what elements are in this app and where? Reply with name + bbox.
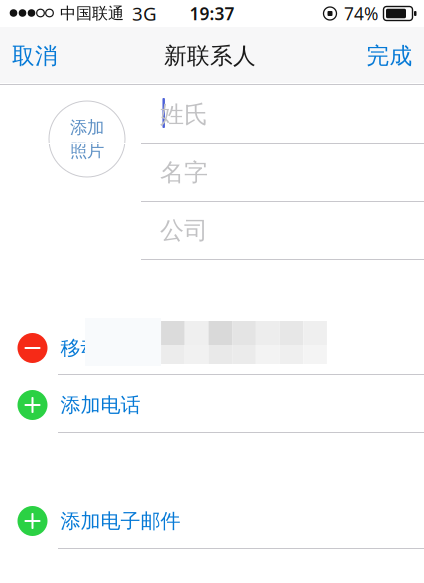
button[interactable]: 取消 (0, 28, 68, 84)
staticText: 名字 (160, 158, 208, 187)
button[interactable]: 添加 (49, 101, 125, 177)
staticText: 添加电子邮件 (60, 509, 180, 533)
button[interactable]: 姓氏 (0, 85, 424, 143)
button[interactable]: 完成 (356, 28, 423, 84)
staticText: 添加 (70, 117, 104, 138)
button[interactable]: 名字 (0, 143, 424, 201)
staticText: 移动 (60, 336, 100, 360)
staticText: 照片 (70, 140, 104, 161)
staticText: 中国联通 (60, 4, 124, 23)
staticText: 取消 (12, 42, 58, 70)
staticText: 3G (132, 1, 157, 26)
staticText: 添加电话 (60, 393, 140, 417)
staticText: 姓氏 (160, 100, 208, 129)
staticText: 新联系人 (164, 42, 256, 70)
button[interactable]: 添加电子邮件 (0, 490, 424, 548)
button[interactable]: 移动 (0, 316, 424, 374)
staticText: 完成 (366, 42, 412, 70)
button[interactable]: 添加电话 (0, 374, 424, 432)
button[interactable]: 公司 (0, 201, 424, 259)
staticText: 74% (344, 2, 378, 25)
staticText: 19:37 (189, 2, 234, 25)
staticText: 公司 (160, 216, 208, 245)
